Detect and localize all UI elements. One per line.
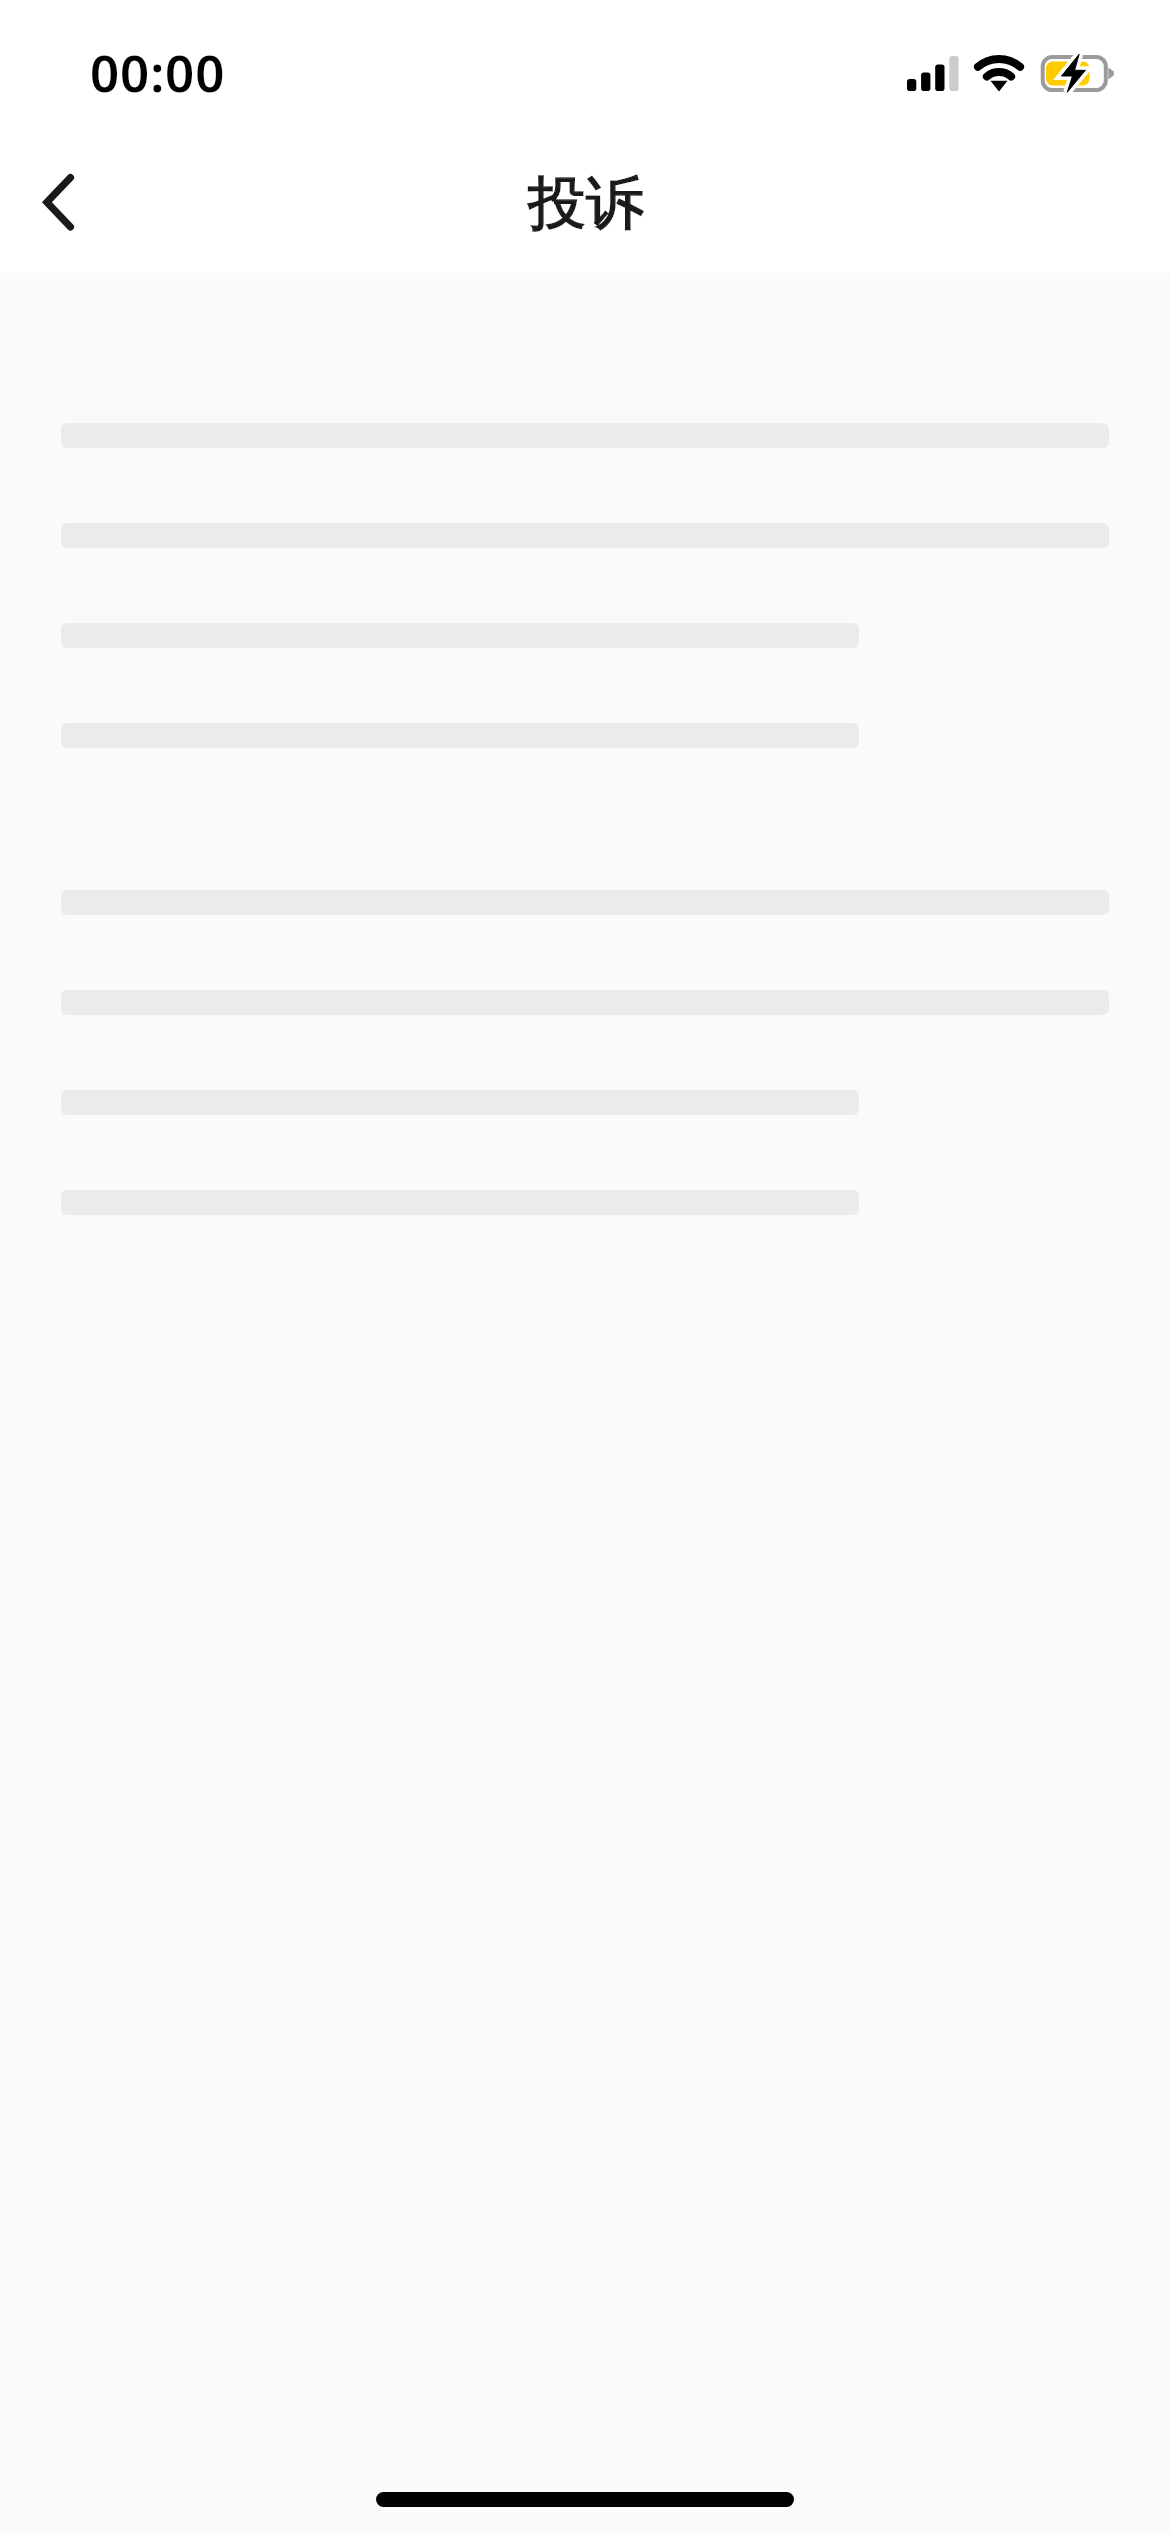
- staticText: 投诉: [528, 167, 644, 240]
- staticText: 投诉: [528, 167, 644, 240]
- staticText: 00:00: [90, 37, 226, 106]
- button[interactable]: Back: [0, 144, 116, 260]
